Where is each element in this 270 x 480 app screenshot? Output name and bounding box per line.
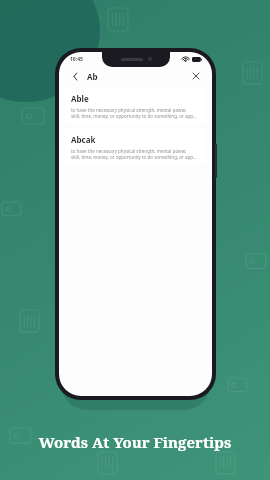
staticText: to have the necessary physical strength,… [71, 148, 187, 154]
staticText: Ab [87, 71, 98, 82]
button[interactable]: Abcak [65, 129, 206, 165]
staticText: 10:45 [70, 56, 83, 63]
staticText: skill, time, money, or opportunity to do… [71, 154, 197, 160]
staticText: Words At Your Fingertips [0, 432, 270, 452]
button[interactable]: Close [189, 69, 203, 83]
staticText: to have the necessary physical strength,… [71, 107, 187, 113]
staticText: skill, time, money, or opportunity to do… [71, 113, 197, 119]
staticText: Abcak [71, 134, 96, 145]
button[interactable]: Back [68, 69, 82, 83]
staticText: Able [71, 93, 89, 104]
button[interactable]: Able [65, 88, 206, 124]
